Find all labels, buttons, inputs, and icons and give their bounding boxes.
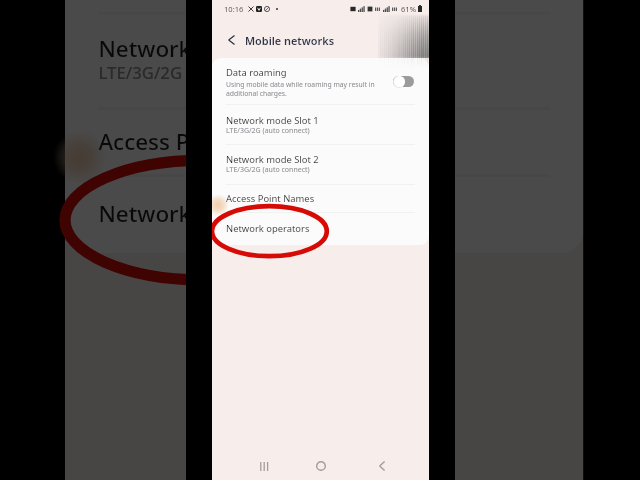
button[interactable]: Navigate up: [221, 28, 241, 52]
staticText: Network operators: [226, 222, 310, 235]
staticText: Network mode Slot 2: [98, 33, 325, 64]
staticText: LTE/3G/2G (auto connect): [226, 126, 310, 136]
staticText: Data roaming: [226, 66, 287, 79]
button[interactable]: Access Point Names: [65, 107, 583, 174]
staticText: Network operators: [98, 198, 304, 229]
button[interactable]: Network operators: [65, 179, 583, 246]
staticText: Network mode Slot 1: [226, 114, 319, 127]
button[interactable]: Recent apps: [253, 455, 275, 477]
staticText: Access Point Names: [98, 126, 313, 157]
button[interactable]: Data roaming switch: [393, 76, 414, 87]
staticText: Network mode Slot 2: [226, 153, 319, 166]
staticText: Mobile networks: [245, 33, 335, 48]
staticText: LTE/3G/2G (auto connect): [98, 62, 301, 86]
button[interactable]: Network mode Slot 2: [212, 144, 429, 184]
staticText: 10:16: [224, 4, 244, 14]
staticText: Using mobile data while roaming may resu…: [226, 80, 375, 89]
button[interactable]: Back: [371, 455, 393, 477]
button[interactable]: Network mode Slot 1: [65, 0, 583, 14]
button[interactable]: Access Point Names: [212, 184, 429, 212]
button[interactable]: Network operators: [212, 214, 429, 242]
staticText: Access Point Names: [226, 192, 315, 205]
staticText: LTE/3G/2G (auto connect): [226, 165, 310, 175]
button[interactable]: Data roaming: [212, 60, 429, 103]
staticText: 61%: [401, 4, 416, 14]
button[interactable]: Home: [310, 455, 332, 477]
staticText: additional charges.: [226, 89, 287, 98]
button[interactable]: Network mode Slot 2: [65, 12, 583, 107]
button[interactable]: Network mode Slot 1: [212, 105, 429, 145]
